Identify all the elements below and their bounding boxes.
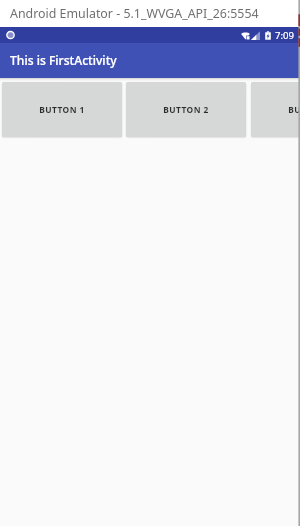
button[interactable]: BUTTON 1 (2, 82, 122, 137)
button[interactable]: BUTTON 2 (126, 82, 246, 137)
button[interactable]: BUTTON 3 (251, 82, 300, 137)
staticText: BUTTON 2 (163, 104, 209, 115)
staticText: BUTTON 3 (288, 104, 300, 115)
staticText: This is FirstActivity (10, 52, 117, 68)
other: Notification (0, 27, 17, 43)
staticText: BUTTON 1 (39, 104, 85, 115)
staticText: 7:09 (275, 29, 295, 42)
staticText: Android Emulator - 5.1_WVGA_API_26:5554 (10, 5, 259, 22)
